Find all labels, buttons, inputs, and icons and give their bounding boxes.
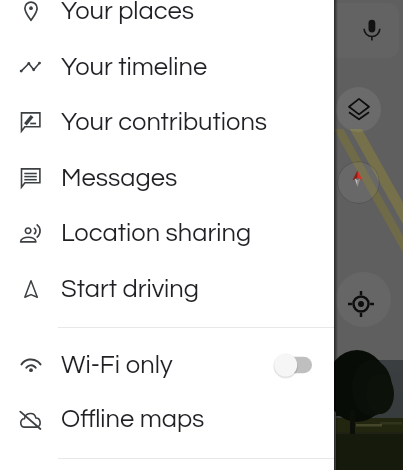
button[interactable]: Your timeline (0, 39, 334, 95)
button[interactable]: Offline maps (0, 391, 334, 447)
staticText: Messages (61, 165, 178, 191)
button[interactable]: Start driving (0, 261, 334, 317)
button[interactable]: Your places (0, 0, 334, 39)
button[interactable]: Your contributions (0, 94, 334, 150)
staticText: Offline maps (61, 406, 205, 432)
button[interactable]: Compass (337, 161, 380, 204)
button[interactable]: Location sharing (0, 205, 334, 261)
staticText: Location sharing (61, 220, 252, 246)
button[interactable]: Voice search (320, 3, 399, 58)
button[interactable]: My location (336, 272, 391, 327)
button[interactable]: Messages (0, 150, 334, 206)
staticText: Start driving (61, 276, 199, 302)
staticText: Your contributions (61, 109, 268, 135)
button[interactable]: Wi-Fi only (0, 337, 334, 393)
staticText: Your places (61, 0, 195, 24)
button[interactable]: Wi-Fi only (274, 352, 314, 378)
staticText: Your timeline (61, 54, 208, 80)
staticText: Wi-Fi only (61, 352, 173, 378)
button[interactable]: Map layers (336, 87, 381, 132)
